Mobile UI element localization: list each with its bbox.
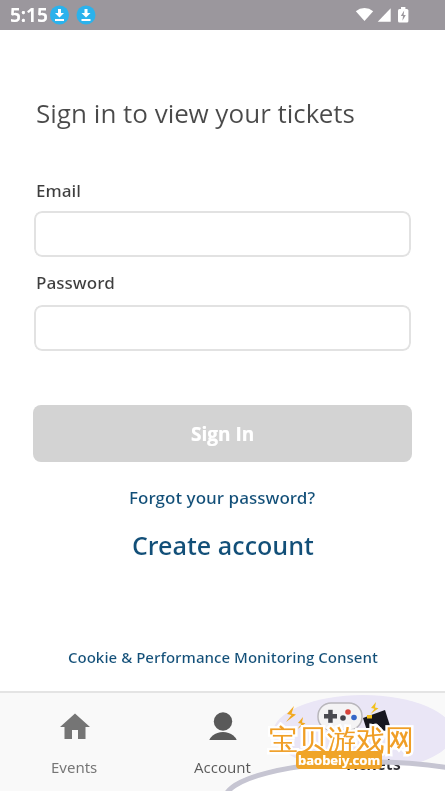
staticText: 宝贝游戏网 (269, 722, 414, 759)
button[interactable]: Sign In (33, 405, 412, 462)
staticText: baobeiy.com (298, 751, 381, 769)
staticText: Account (194, 757, 252, 777)
staticText: Password (36, 271, 115, 294)
staticText: 5:15 (10, 2, 48, 28)
button[interactable]: Create account (132, 528, 314, 562)
staticText: Tickets (344, 753, 401, 775)
button[interactable]: Forgot your password? (129, 486, 316, 509)
button[interactable] (34, 305, 411, 351)
staticText: Email (36, 179, 82, 202)
staticText: 宝贝游戏网 (269, 722, 414, 759)
staticText: Tickets (347, 757, 396, 777)
button[interactable]: Cookie & Performance Monitoring Consent (68, 647, 378, 667)
staticText: Events (51, 757, 98, 777)
button[interactable]: Tickets (297, 693, 445, 791)
button[interactable]: Events (0, 693, 149, 791)
button[interactable]: Account (149, 693, 297, 791)
button[interactable] (34, 211, 411, 257)
staticText: Sign in to view your tickets (36, 95, 355, 130)
staticText: Sign In (191, 421, 255, 447)
